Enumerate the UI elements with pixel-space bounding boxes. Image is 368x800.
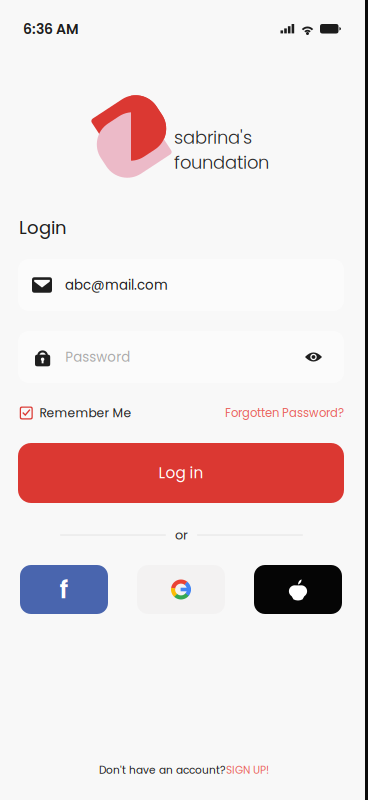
button[interactable]: Show password <box>305 351 344 362</box>
button[interactable]: Continue with Google <box>137 565 225 614</box>
button[interactable]: SIGN UP! <box>226 763 269 777</box>
staticText: Remember Me <box>39 404 131 422</box>
button[interactable]: Forgotten Password? <box>225 405 344 421</box>
button[interactable]: Continue with Facebook <box>20 565 108 614</box>
button[interactable]: Remember Me <box>19 404 131 422</box>
staticText: Don't have an account? <box>99 763 226 777</box>
button[interactable]: Log in <box>18 443 344 503</box>
staticText: foundation <box>174 150 269 175</box>
staticText: Forgotten Password? <box>225 405 344 421</box>
staticText: sabrina's <box>174 125 252 150</box>
staticText: Password <box>65 348 130 366</box>
staticText: 6:36 AM <box>23 19 79 39</box>
staticText: Log in <box>158 462 203 484</box>
staticText: Login <box>19 215 67 240</box>
staticText: f <box>59 572 68 607</box>
staticText: or <box>175 526 188 544</box>
staticText: abc@mail.com <box>65 276 168 294</box>
button[interactable]: Continue with Apple <box>254 565 342 614</box>
staticText: SIGN UP! <box>226 763 269 777</box>
